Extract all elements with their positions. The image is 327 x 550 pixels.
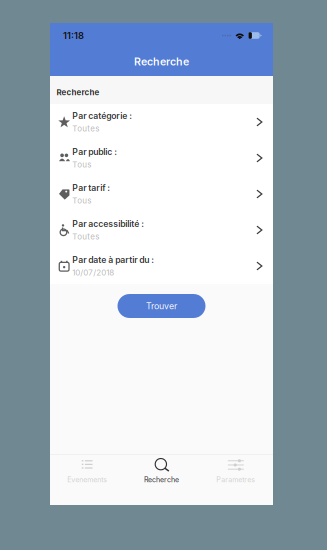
button[interactable]: Par tarif : bbox=[50, 176, 273, 212]
staticText: Evenements bbox=[67, 475, 107, 484]
staticText: Par public : bbox=[72, 147, 117, 157]
button[interactable]: Trouver bbox=[117, 294, 205, 318]
staticText: Trouver bbox=[146, 301, 177, 311]
staticText: Recherche bbox=[144, 475, 179, 484]
staticText: Par date à partir du : bbox=[72, 255, 154, 265]
button[interactable]: Parametres bbox=[199, 454, 273, 505]
staticText: 11:18 bbox=[63, 30, 84, 41]
staticText: Par catégorie : bbox=[72, 111, 132, 121]
button[interactable]: Par accessibilité : bbox=[50, 212, 273, 248]
staticText: Toutes bbox=[72, 232, 99, 241]
staticText: Toutes bbox=[72, 124, 99, 133]
button[interactable]: Par public : bbox=[50, 140, 273, 176]
staticText: Tous bbox=[72, 160, 91, 169]
button[interactable]: Par date à partir du : bbox=[50, 248, 273, 284]
staticText: 10/07/2018 bbox=[72, 268, 114, 277]
staticText: Tous bbox=[72, 196, 91, 205]
button[interactable]: Recherche bbox=[124, 454, 199, 505]
staticText: Par accessibilité : bbox=[72, 219, 144, 229]
staticText: Recherche bbox=[57, 87, 100, 97]
button[interactable]: Par catégorie : bbox=[50, 104, 273, 140]
button[interactable]: Evenements bbox=[50, 454, 124, 505]
staticText: Recherche bbox=[134, 55, 189, 68]
staticText: Parametres bbox=[216, 475, 255, 484]
staticText: Par tarif : bbox=[72, 183, 110, 193]
